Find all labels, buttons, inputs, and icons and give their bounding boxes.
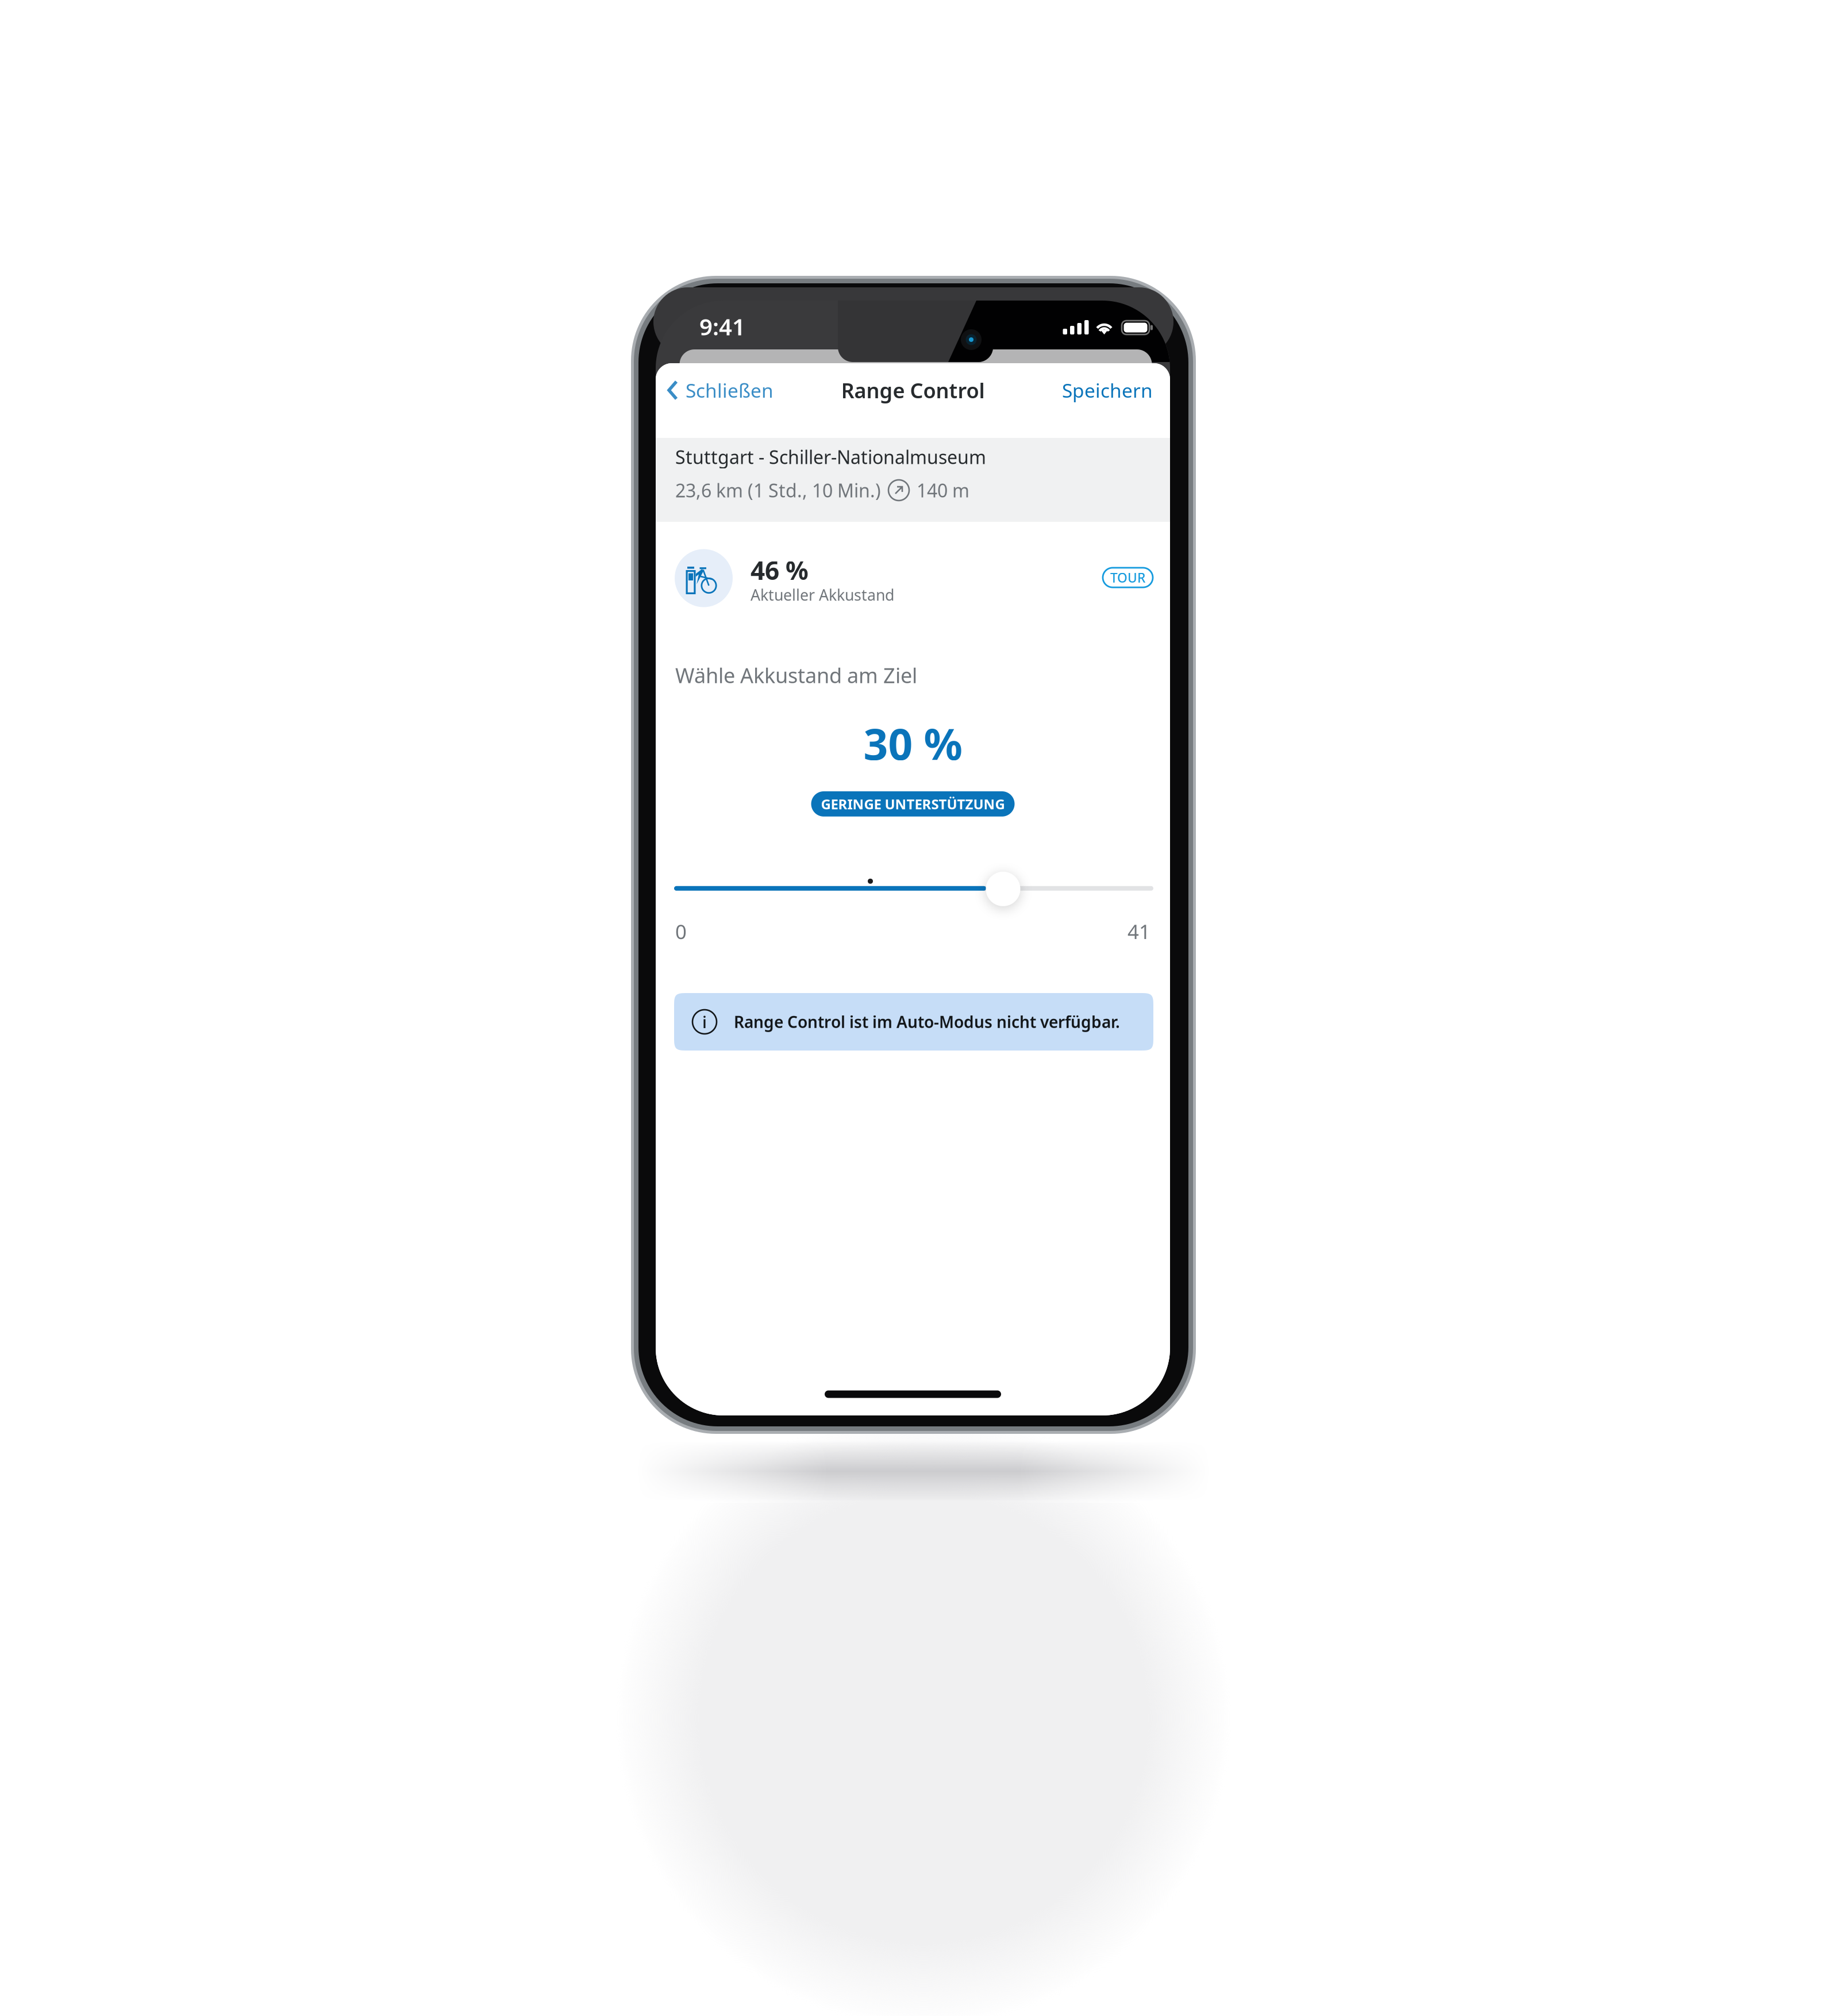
staticText: 9:41 — [699, 311, 745, 342]
staticText: Range Control ist im Auto-Modus nicht ve… — [734, 1011, 1120, 1032]
staticText: i — [702, 1011, 707, 1033]
staticText: Schließen — [686, 378, 774, 403]
staticText: Wähle Akkustand am Ziel — [675, 661, 917, 689]
staticText: 140 m — [917, 478, 969, 502]
staticText: 41 — [1128, 918, 1150, 945]
staticText: GERINGE UNTERSTÜTZUNG — [821, 795, 1005, 813]
staticText: TOUR — [1110, 569, 1145, 586]
staticText: 23,6 km (1 Std., 10 Min.) — [675, 478, 881, 502]
staticText: Speichern — [1062, 378, 1153, 403]
staticText: 46 % — [751, 553, 809, 587]
staticText: Range Control — [841, 376, 985, 404]
staticText: 0 — [675, 918, 687, 945]
staticText: 30 % — [863, 715, 962, 772]
staticText: Aktueller Akkustand — [751, 585, 894, 605]
button[interactable]: Speichern — [1045, 365, 1170, 416]
button[interactable]: Schließen — [656, 365, 783, 416]
staticText: Stuttgart - Schiller-Nationalmuseum — [675, 445, 986, 469]
